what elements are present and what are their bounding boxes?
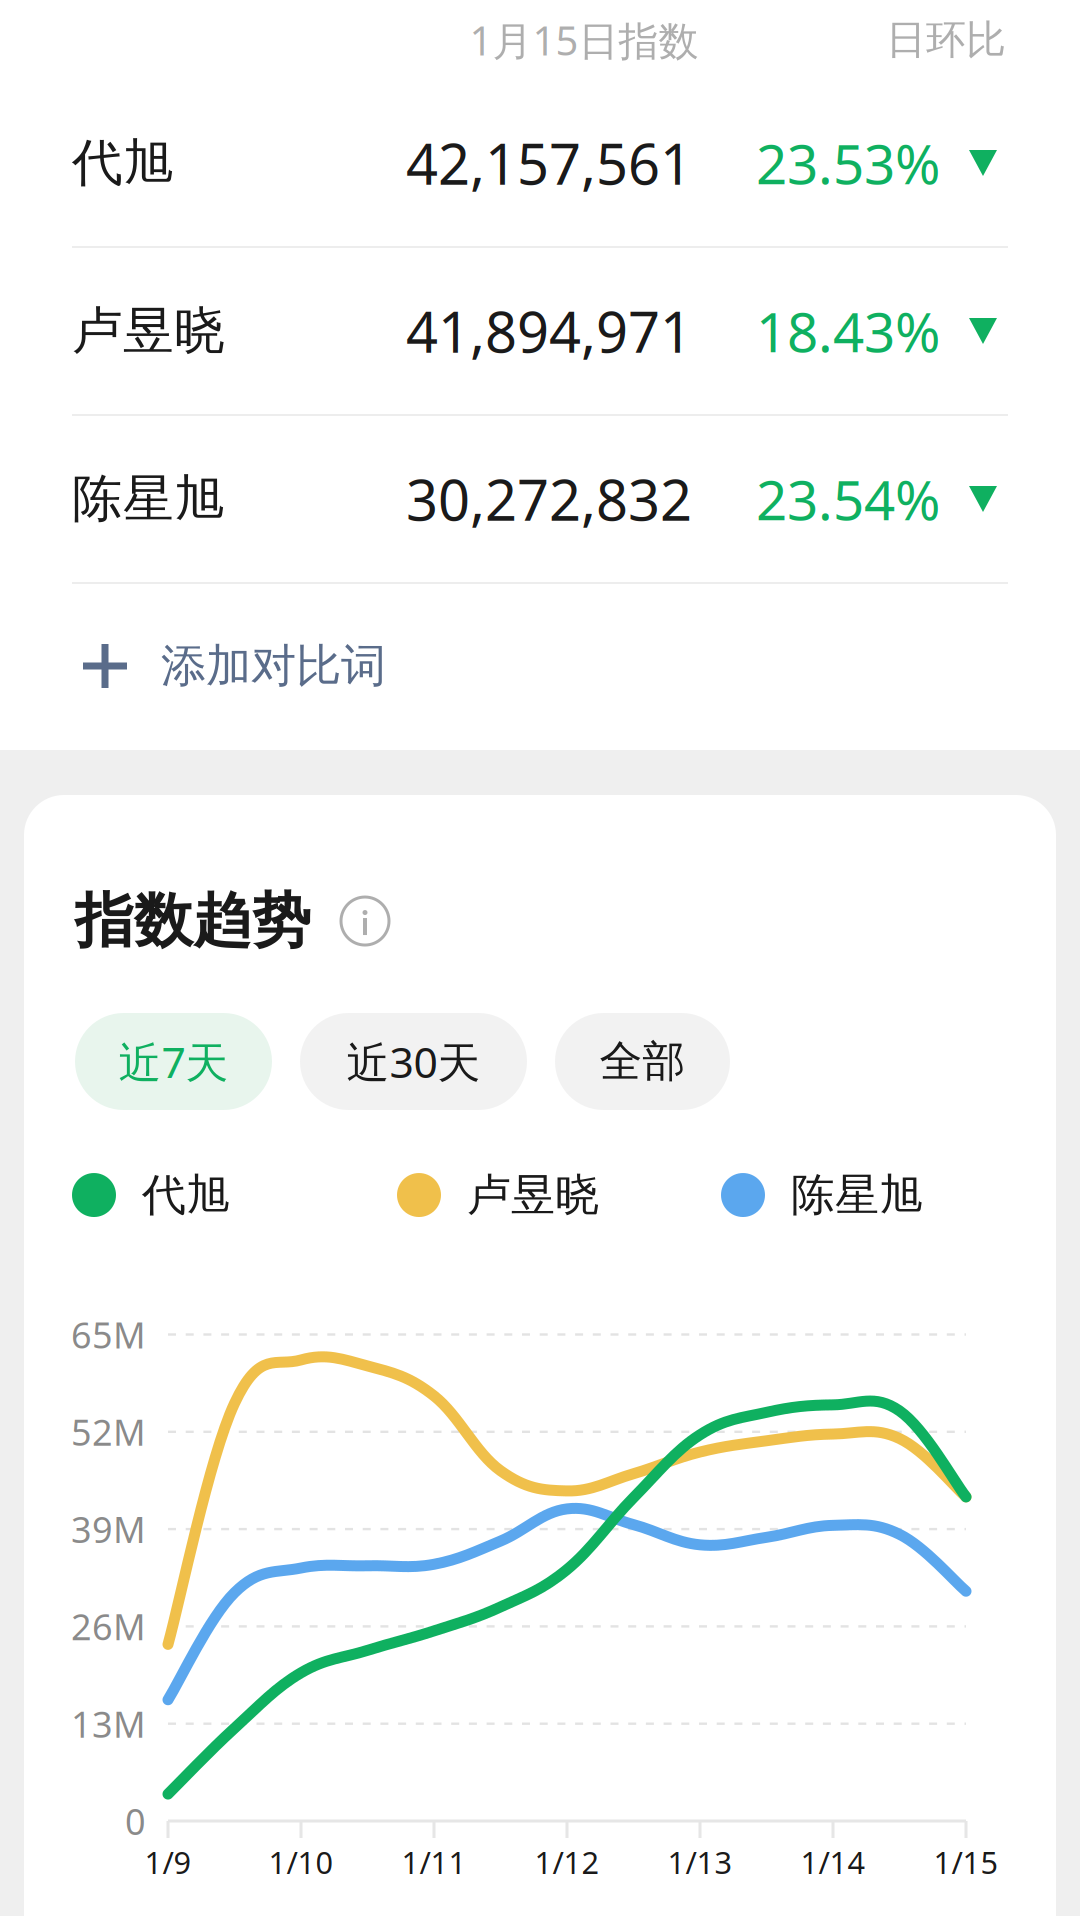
staticText: 1/9	[144, 1842, 191, 1882]
staticText: 1/15	[933, 1842, 998, 1882]
staticText: 近7天	[118, 1033, 228, 1090]
staticText: 1/13	[667, 1842, 732, 1882]
staticText: 65M	[71, 1311, 146, 1358]
staticText: 全部	[599, 1035, 685, 1088]
button[interactable]: 指数趋势说明	[341, 897, 389, 945]
staticText: 13M	[71, 1700, 146, 1748]
staticText: 1/14	[800, 1842, 865, 1882]
button[interactable]: 全部	[555, 1013, 730, 1110]
button[interactable]: 近30天	[300, 1013, 527, 1110]
staticText: 30,272,832	[406, 462, 692, 536]
staticText: 26M	[71, 1602, 146, 1650]
button[interactable]: 近7天	[75, 1013, 272, 1110]
staticText: 0	[125, 1797, 146, 1845]
staticText: 39M	[71, 1505, 146, 1553]
staticText: 添加对比词	[161, 638, 386, 694]
staticText: 52M	[71, 1408, 146, 1456]
button[interactable]: 添加对比词	[0, 590, 1080, 742]
button[interactable]: 陈星旭	[0, 416, 1080, 582]
staticText: 代旭	[72, 132, 174, 194]
staticText: 代旭	[142, 1168, 230, 1222]
staticText: 1/11	[401, 1842, 466, 1882]
staticText: 41,894,971	[406, 294, 692, 368]
staticText: 卢昱晓	[467, 1168, 599, 1222]
staticText: 1/12	[534, 1842, 599, 1882]
staticText: 日环比	[886, 15, 1006, 64]
staticText: 1/10	[268, 1842, 333, 1882]
staticText: 42,157,561	[406, 126, 692, 200]
button[interactable]: 代旭	[0, 80, 1080, 246]
staticText: 1月15日指数	[469, 13, 698, 66]
staticText: 近30天	[346, 1033, 480, 1090]
staticText: 23.53%	[756, 127, 940, 199]
staticText: 陈星旭	[791, 1168, 923, 1222]
staticText: 指数趋势	[75, 885, 311, 957]
staticText: 陈星旭	[72, 468, 225, 530]
staticText: 23.54%	[756, 463, 940, 535]
staticText: 卢昱晓	[72, 300, 225, 362]
button[interactable]: 卢昱晓	[0, 248, 1080, 414]
staticText: 18.43%	[756, 295, 940, 367]
